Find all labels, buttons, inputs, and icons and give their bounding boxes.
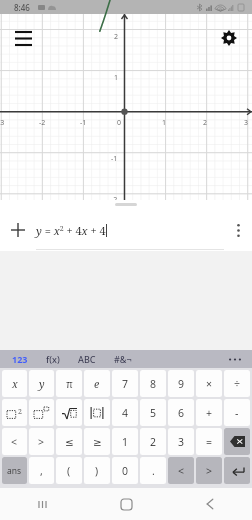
- button[interactable]: <: [168, 457, 194, 484]
- button[interactable]: 8: [140, 370, 166, 397]
- button[interactable]: Enter: [224, 457, 250, 484]
- staticText: -: [235, 406, 239, 420]
- staticText: -1: [80, 118, 87, 128]
- button[interactable]: ×: [196, 370, 222, 397]
- staticText: ): [95, 464, 99, 478]
- staticText: ÷: [234, 377, 241, 391]
- staticText: .: [152, 464, 155, 478]
- staticText: y: [39, 377, 45, 391]
- button[interactable]: Home: [84, 488, 168, 520]
- staticText: ans: [7, 465, 22, 477]
- button[interactable]: Square root: [56, 399, 82, 426]
- button[interactable]: Add: [0, 209, 36, 251]
- staticText: 9: [178, 377, 185, 391]
- staticText: e: [94, 377, 100, 391]
- button[interactable]: f(x): [44, 351, 62, 367]
- staticText: +: [206, 406, 213, 420]
- staticText: y = x2 + 4x + 4: [36, 223, 106, 238]
- staticText: =: [206, 435, 213, 449]
- button[interactable]: >: [29, 428, 54, 455]
- button[interactable]: ABC: [76, 351, 98, 367]
- staticText: 2: [18, 407, 22, 417]
- staticText: >: [38, 435, 45, 449]
- staticText: -2: [111, 195, 118, 205]
- button[interactable]: +: [196, 399, 222, 426]
- button[interactable]: ,: [29, 457, 54, 484]
- staticText: ,: [40, 464, 43, 478]
- button[interactable]: ≥: [84, 428, 110, 455]
- button[interactable]: 0: [112, 457, 138, 484]
- button[interactable]: Recent apps: [0, 488, 84, 520]
- button[interactable]: Back: [168, 488, 252, 520]
- button[interactable]: π: [56, 370, 82, 397]
- button[interactable]: 9: [168, 370, 194, 397]
- staticText: >: [206, 464, 213, 478]
- button[interactable]: -: [224, 399, 250, 426]
- staticText: ABC: [78, 353, 96, 365]
- staticText: 1: [114, 73, 119, 83]
- button[interactable]: ≤: [56, 428, 82, 455]
- staticText: 8: [150, 377, 157, 391]
- staticText: 7: [122, 377, 129, 391]
- button[interactable]: 1: [112, 428, 138, 455]
- button[interactable]: Power: [29, 399, 54, 426]
- button[interactable]: <: [2, 428, 27, 455]
- staticText: -2: [39, 118, 46, 128]
- staticText: ≤: [65, 436, 74, 448]
- button[interactable]: Absolute value: [84, 399, 110, 426]
- button[interactable]: 3: [168, 428, 194, 455]
- button[interactable]: (: [56, 457, 82, 484]
- button[interactable]: ÷: [224, 370, 250, 397]
- staticText: (: [67, 464, 71, 478]
- button[interactable]: .: [140, 457, 166, 484]
- button[interactable]: More: [224, 350, 246, 368]
- button[interactable]: More options: [224, 209, 252, 251]
- button[interactable]: ans: [2, 457, 27, 484]
- button[interactable]: e: [84, 370, 110, 397]
- staticText: #&¬: [114, 353, 132, 365]
- button[interactable]: 7: [112, 370, 138, 397]
- button[interactable]: 2: [140, 428, 166, 455]
- button[interactable]: 5: [140, 399, 166, 426]
- staticText: 4: [122, 406, 129, 420]
- staticText: -3: [0, 118, 5, 128]
- staticText: 0: [117, 118, 122, 128]
- button[interactable]: 4: [112, 399, 138, 426]
- button[interactable]: ): [84, 457, 110, 484]
- staticText: 1: [122, 435, 129, 449]
- staticText: 0: [122, 464, 129, 478]
- button[interactable]: y = x2 + 4x + 4: [36, 209, 224, 251]
- button[interactable]: x: [2, 370, 27, 397]
- button[interactable]: y: [29, 370, 54, 397]
- staticText: ≥: [93, 436, 102, 448]
- staticText: <: [178, 464, 185, 478]
- staticText: f(x): [46, 353, 60, 365]
- button[interactable]: Backspace: [224, 428, 250, 455]
- staticText: 5: [150, 406, 157, 420]
- button[interactable]: Settings: [214, 23, 244, 53]
- staticText: 2: [150, 435, 157, 449]
- staticText: <: [11, 435, 18, 449]
- staticText: 123: [12, 353, 28, 365]
- staticText: π: [66, 377, 73, 391]
- staticText: x: [12, 377, 18, 391]
- button[interactable]: #&¬: [112, 351, 134, 367]
- staticText: ×: [206, 377, 213, 391]
- staticText: 1: [162, 118, 167, 128]
- staticText: 8:46: [14, 2, 30, 13]
- staticText: -1: [111, 154, 118, 164]
- button[interactable]: 6: [168, 399, 194, 426]
- staticText: 2: [114, 32, 119, 42]
- staticText: 6: [178, 406, 185, 420]
- button[interactable]: Menu: [8, 23, 38, 53]
- button[interactable]: 123: [10, 351, 30, 367]
- staticText: 3: [244, 118, 249, 128]
- staticText: 2: [203, 118, 208, 128]
- button[interactable]: >: [196, 457, 222, 484]
- button[interactable]: Square: [2, 399, 27, 426]
- staticText: 3: [178, 435, 185, 449]
- button[interactable]: =: [196, 428, 222, 455]
